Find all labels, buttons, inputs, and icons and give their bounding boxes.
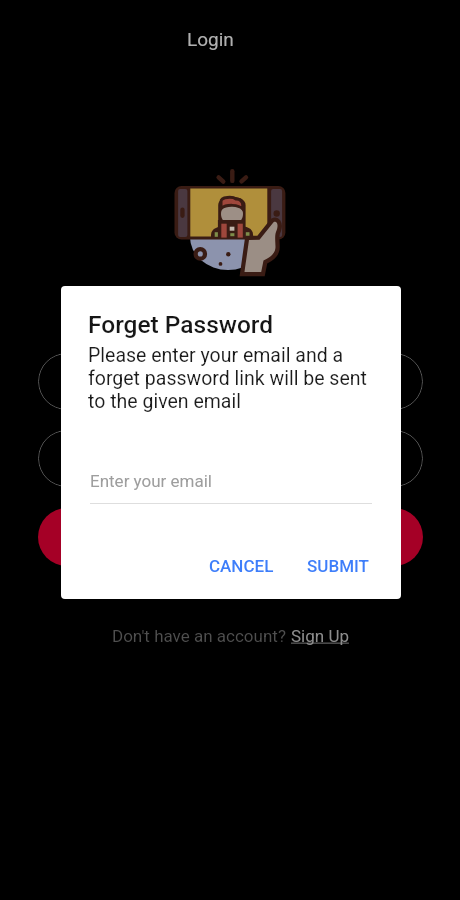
button[interactable]: Sign Up — [291, 626, 349, 646]
staticText: CANCEL — [209, 556, 274, 576]
staticText: Don't have an account? — [112, 626, 291, 646]
button[interactable] — [38, 430, 423, 487]
staticText: Forget Password — [88, 310, 274, 339]
button[interactable]: CANCEL — [209, 556, 274, 576]
staticText: Login — [187, 28, 234, 50]
button[interactable]: Enter your email — [90, 471, 213, 491]
staticText: Enter your email — [90, 471, 213, 491]
button[interactable]: SUBMIT — [307, 556, 369, 576]
staticText: SUBMIT — [307, 556, 369, 576]
button[interactable]: LOGIN — [38, 508, 423, 566]
staticText: Please enter your email and a forget pas… — [88, 344, 373, 413]
staticText: Sign Up — [291, 626, 349, 646]
button[interactable] — [38, 353, 423, 410]
